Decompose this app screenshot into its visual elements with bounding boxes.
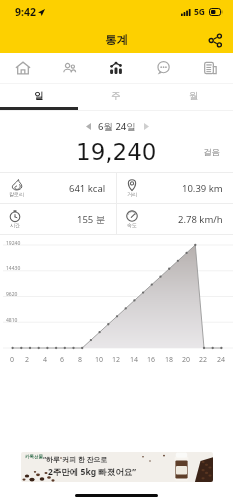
staticText: 14 <box>130 355 139 365</box>
button[interactable]: Previous day <box>81 119 95 133</box>
staticText: 14430 <box>6 265 21 272</box>
button[interactable]: 칼로리 <box>0 173 116 203</box>
button[interactable]: 주 <box>77 84 155 107</box>
staticText: 8 <box>78 355 83 365</box>
staticText: 22 <box>199 355 208 365</box>
staticText: 10 <box>95 355 104 365</box>
button[interactable]: “하루 커피 한 잔으로 <box>21 452 213 482</box>
staticText: 칼로리 <box>9 191 24 197</box>
staticText: 5G <box>194 6 206 18</box>
staticText: 일 <box>34 90 44 102</box>
staticText: 2주만에 5kg 빠졌어요” <box>48 466 137 478</box>
button[interactable]: Share <box>203 28 227 52</box>
staticText: 주 <box>111 90 121 102</box>
staticText: 24 <box>217 355 226 365</box>
staticText: 시간 <box>10 222 20 228</box>
staticText: 2 <box>25 355 30 365</box>
button[interactable]: Friends <box>46 53 92 83</box>
staticText: 4810 <box>6 317 18 324</box>
staticText: 641 kcal <box>69 182 106 195</box>
button[interactable]: News <box>186 53 233 83</box>
staticText: 19240 <box>6 240 21 247</box>
staticText: 카톡선물 <box>25 454 43 460</box>
staticText: 6월 24일 <box>98 120 136 133</box>
staticText: 12 <box>112 355 121 365</box>
staticText: 9620 <box>6 291 18 298</box>
staticText: “하루 커피 한 잔으로 <box>43 455 108 465</box>
staticText: 월 <box>189 90 199 102</box>
staticText: 2.78 km/h <box>178 213 223 226</box>
staticText: 0 <box>10 355 15 365</box>
staticText: 9:42 <box>15 5 36 19</box>
button[interactable]: 시간 <box>0 204 116 234</box>
button[interactable]: 일 <box>0 84 77 107</box>
button[interactable]: Home <box>0 53 46 83</box>
staticText: 20 <box>182 355 191 365</box>
staticText: 10.39 km <box>182 182 223 195</box>
staticText: 16 <box>147 355 156 365</box>
button[interactable]: 월 <box>155 84 233 107</box>
button[interactable]: 속도 <box>117 204 233 234</box>
staticText: 걸음 <box>203 147 220 158</box>
button[interactable]: Next day <box>139 119 153 133</box>
staticText: 속도 <box>127 222 137 228</box>
button[interactable]: Chat <box>139 53 186 83</box>
staticText: 19,240 <box>76 139 157 166</box>
staticText: 거리 <box>127 191 137 197</box>
staticText: 155 분 <box>77 213 106 226</box>
button[interactable]: 거리 <box>117 173 233 203</box>
staticText: 통계 <box>105 33 128 47</box>
staticText: 18 <box>165 355 174 365</box>
button[interactable]: Statistics <box>92 53 139 83</box>
staticText: 4 <box>43 355 48 365</box>
staticText: 6 <box>60 355 65 365</box>
